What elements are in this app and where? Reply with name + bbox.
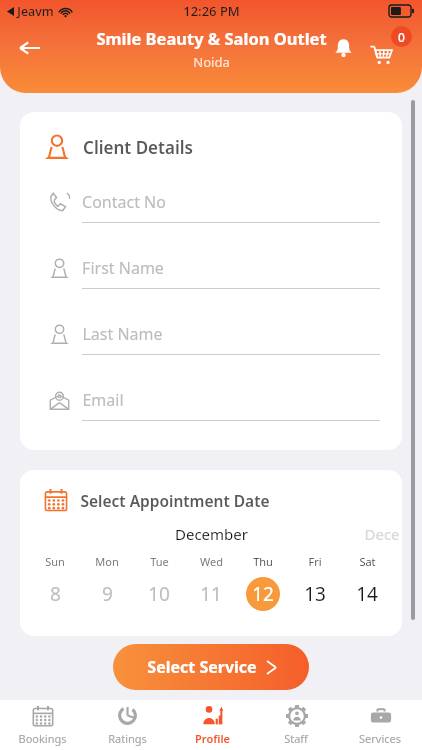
staticText: 14 [356,581,378,607]
staticText: Jeavm [17,3,54,20]
staticText: 12:26 PM [183,2,240,20]
button[interactable]: First Name [44,248,380,314]
staticText: Ratings [108,731,147,746]
button[interactable]: Fri [289,554,341,611]
staticText: Tue [150,554,169,569]
staticText: First Name [82,257,164,279]
button[interactable]: Tue [133,554,185,611]
staticText: 10 [148,581,170,607]
staticText: Select Service [147,656,257,678]
staticText: Bookings [18,731,67,746]
button[interactable]: Email [44,380,380,446]
staticText: 0 [398,29,405,45]
button[interactable]: Wed [185,554,237,611]
staticText: 8 [50,581,61,607]
button[interactable]: Profile [170,700,254,750]
staticText: Thu [253,554,273,569]
staticText: 12 [252,581,274,607]
staticText: Profile [195,731,230,746]
staticText: Contact No [82,191,166,213]
button[interactable]: Staff [254,700,338,750]
staticText: Fri [308,554,322,569]
button[interactable]: Ratings [85,700,170,750]
staticText: 11 [200,581,222,607]
staticText: Wed [200,554,223,569]
staticText: 9 [102,581,113,607]
button[interactable]: Notifications [326,30,360,64]
staticText: Email [82,389,124,411]
button[interactable]: Select Service [113,644,309,690]
staticText: Services [359,731,401,746]
button[interactable]: Bookings [0,700,85,750]
button[interactable]: Services [338,700,422,750]
button[interactable]: Sun [29,554,81,611]
staticText: 13 [304,581,326,607]
staticText: December [175,524,248,544]
staticText: Select Appointment Date [80,490,270,511]
button[interactable]: Thu [237,554,289,611]
staticText: Staff [284,731,308,746]
button[interactable]: Contact No [44,182,380,248]
staticText: Client Details [83,136,193,159]
staticText: Sun [45,554,65,569]
button[interactable]: Mon [81,554,133,611]
staticText: Noida [193,53,230,71]
button[interactable]: Cart [368,26,412,70]
staticText: Mon [95,554,119,569]
staticText: Smile Beauty & Salon Outlet [96,27,327,49]
button[interactable]: Back [12,30,48,66]
button[interactable]: Last Name [44,314,380,380]
button[interactable]: Sat [341,554,393,611]
staticText: Sat [359,554,376,569]
staticText: Last Name [82,323,163,345]
staticText: Dece [364,524,400,544]
